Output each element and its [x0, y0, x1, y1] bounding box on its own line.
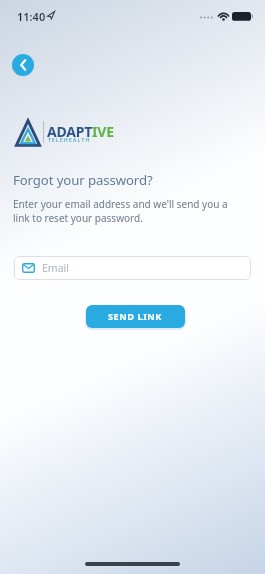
staticText: SEND LINK [108, 310, 163, 323]
button[interactable]: Email [14, 256, 251, 280]
button[interactable]: SEND LINK [86, 305, 185, 328]
staticText: ADAPTIVE [47, 122, 114, 141]
button[interactable] [12, 54, 34, 76]
staticText: Email [42, 261, 69, 275]
staticText: Forgot your password? [13, 171, 153, 189]
staticText: Enter your email address and we'll send … [13, 197, 228, 225]
staticText: TELEHEALTH [48, 137, 91, 144]
staticText: 11:40 [17, 9, 46, 24]
